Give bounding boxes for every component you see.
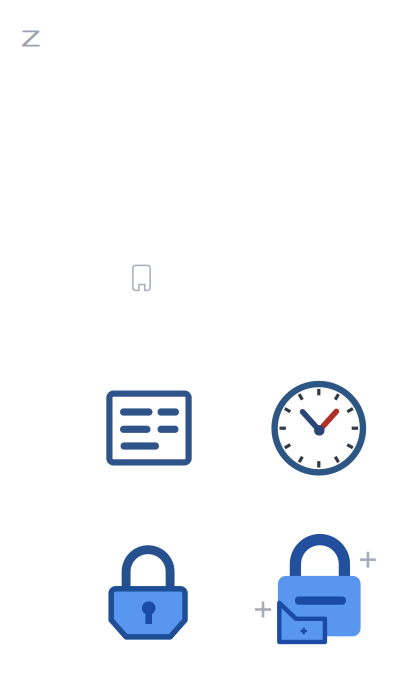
staticText: Z [25, 24, 37, 52]
